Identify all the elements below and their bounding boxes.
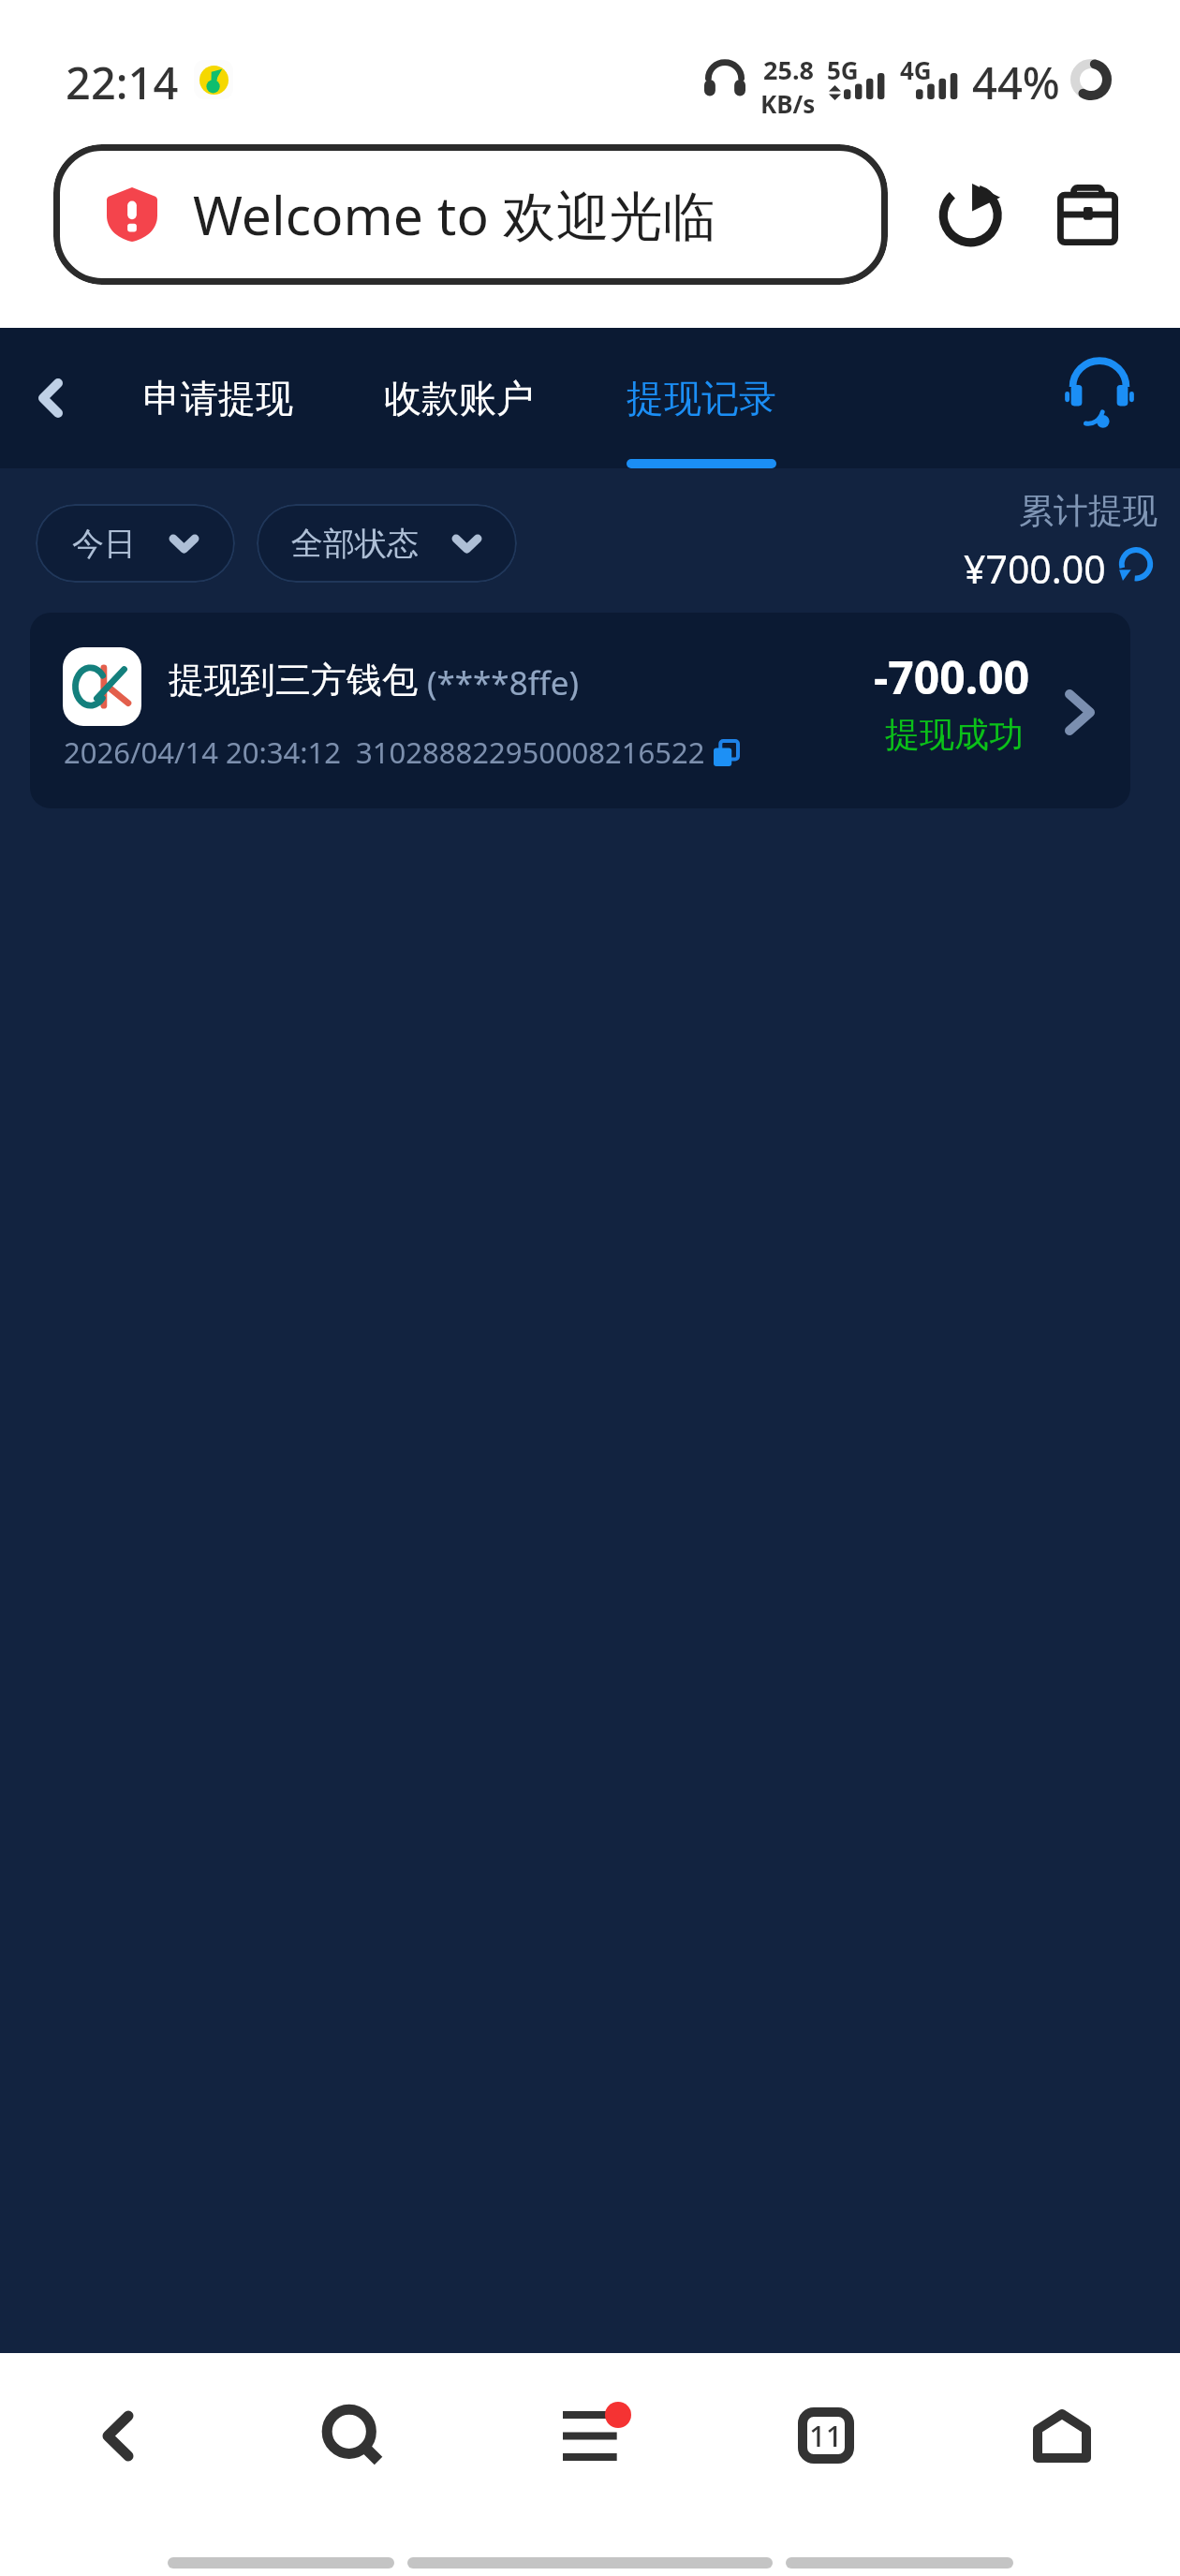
staticText: KB/s — [760, 87, 816, 120]
button[interactable]: 提现到三方钱包 — [30, 613, 1130, 808]
staticText: -700.00 — [874, 646, 1030, 707]
button[interactable]: 收款账户 — [356, 328, 562, 468]
button[interactable]: Home — [987, 2370, 1137, 2501]
staticText: (****8ffe) — [427, 660, 579, 705]
button[interactable]: Welcome to 欢迎光临 — [53, 144, 888, 285]
button[interactable]: Menu — [522, 2370, 671, 2501]
staticText: 收款账户 — [384, 375, 534, 422]
staticText: Welcome to 欢迎光临 — [193, 178, 716, 251]
button[interactable]: Customer service — [1056, 348, 1143, 435]
button[interactable]: Search — [278, 2370, 428, 2501]
button[interactable]: Back — [43, 2370, 193, 2501]
staticText: 提现到三方钱包 — [169, 658, 418, 703]
staticText: 申请提现 — [143, 375, 293, 422]
staticText: ¥700.00 — [964, 542, 1106, 595]
button[interactable]: Back — [7, 355, 94, 441]
staticText: 提现记录 — [627, 375, 776, 422]
button[interactable]: Tabs — [751, 2370, 901, 2501]
staticText: 44% — [972, 52, 1060, 112]
staticText: 今日 — [72, 524, 136, 564]
staticText: 2026/04/14 20:34:12 31028882295000821652… — [64, 733, 705, 772]
staticText: 提现成功 — [885, 713, 1024, 757]
staticText: 累计提现 — [1019, 489, 1158, 533]
staticText: 5G — [827, 53, 859, 86]
staticText: 25.8 — [763, 52, 814, 87]
staticText: 全部状态 — [291, 524, 419, 564]
button[interactable]: 申请提现 — [115, 328, 321, 468]
staticText: 22:14 — [66, 52, 179, 112]
button[interactable]: Reload — [924, 172, 1012, 260]
button[interactable]: Copy — [705, 733, 746, 774]
button[interactable]: 提现记录 — [598, 328, 804, 468]
button[interactable]: 今日 — [36, 504, 235, 583]
button[interactable]: 全部状态 — [257, 504, 517, 583]
button[interactable]: Refresh — [1114, 543, 1158, 586]
staticText: 4G — [900, 53, 932, 86]
staticText: 11 — [809, 2416, 843, 2455]
button[interactable]: Toolbox — [1046, 173, 1129, 257]
